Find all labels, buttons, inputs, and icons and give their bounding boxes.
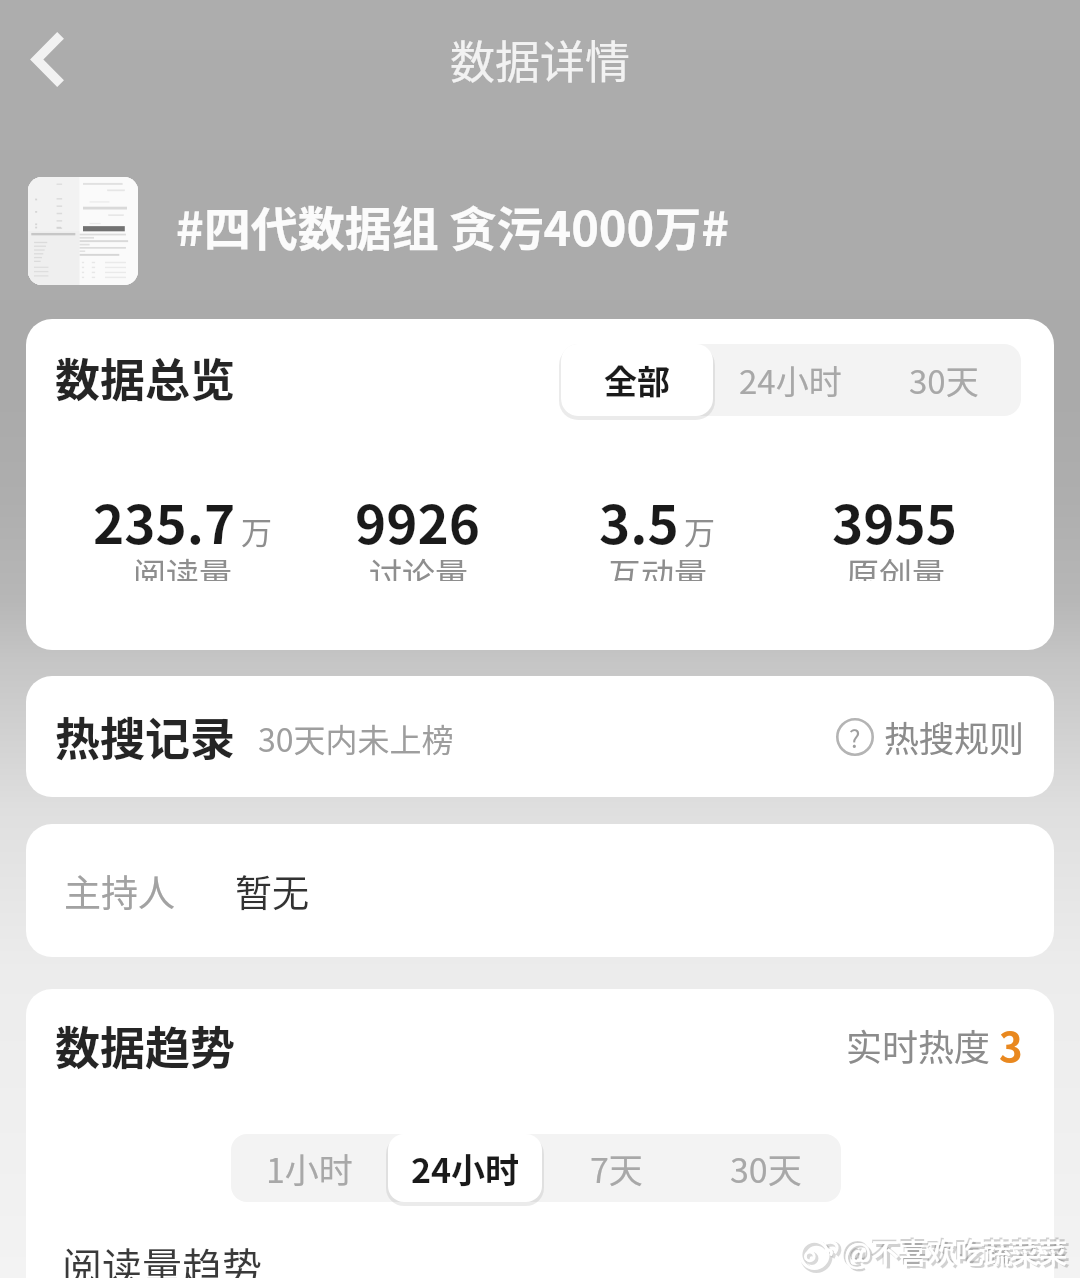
staticText: 3 xyxy=(999,1016,1023,1074)
staticText: 30天内未上榜 xyxy=(258,715,454,761)
staticText: 数据总览 xyxy=(55,345,236,410)
button[interactable]: 235.7 xyxy=(62,483,302,593)
staticText: 24小时 xyxy=(411,1144,520,1193)
staticText: 热搜记录 xyxy=(55,704,236,769)
staticText: 30天 xyxy=(730,1144,802,1193)
staticText: 暂无 xyxy=(235,864,309,918)
button[interactable]: 实时热度 xyxy=(846,1013,1023,1071)
staticText: 9926 xyxy=(355,483,481,560)
button[interactable]: 24小时 xyxy=(713,344,867,416)
staticText: 主持人 xyxy=(64,864,175,918)
staticText: 全部 xyxy=(604,356,670,404)
staticText: 3955 xyxy=(832,483,958,560)
button[interactable]: 1小时 xyxy=(231,1134,388,1202)
staticText: 235.7 xyxy=(93,483,236,560)
staticText: 阅读量 xyxy=(133,549,232,581)
staticText: @不喜欢吃蔬菜菜 xyxy=(846,1234,1071,1275)
button[interactable]: 主持人 xyxy=(26,824,1054,957)
staticText: @不喜欢吃蔬菜菜 xyxy=(842,1230,1067,1271)
staticText: 7天 xyxy=(590,1144,643,1193)
staticText: 阅读量趋势 xyxy=(62,1236,262,1278)
button[interactable]: 3.5 xyxy=(537,483,777,593)
staticText: ? xyxy=(849,720,861,755)
staticText: 24小时 xyxy=(739,356,842,404)
staticText: 讨论量 xyxy=(369,549,468,581)
staticText: 原创量 xyxy=(846,549,945,581)
staticText: 数据趋势 xyxy=(55,1013,236,1078)
staticText: 数据详情 xyxy=(450,27,631,92)
button[interactable]: 热搜规则 xyxy=(836,711,1025,762)
staticText: 1小时 xyxy=(266,1144,353,1193)
button[interactable]: Topic image xyxy=(28,177,138,285)
button[interactable]: 30天 xyxy=(690,1134,841,1202)
staticText: 30天 xyxy=(909,356,979,404)
button[interactable]: 9926 xyxy=(298,483,538,593)
staticText: 万 xyxy=(684,508,715,553)
staticText: 互动量 xyxy=(608,549,707,581)
staticText: 3.5 xyxy=(599,483,679,560)
button[interactable]: 全部 xyxy=(561,344,713,416)
staticText: 热搜规则 xyxy=(884,711,1025,762)
staticText: 万 xyxy=(241,508,272,553)
button[interactable]: 24小时 xyxy=(388,1134,542,1202)
button[interactable]: 3955 xyxy=(775,483,1015,593)
button[interactable]: 30天 xyxy=(867,344,1021,416)
staticText: #四代数据组 贪污4000万# xyxy=(176,191,730,259)
button[interactable]: 7天 xyxy=(542,1134,690,1202)
button[interactable]: Back xyxy=(16,28,88,100)
staticText: 实时热度 xyxy=(846,1019,991,1071)
staticText: @不喜欢吃蔬菜菜 xyxy=(844,1232,1068,1273)
